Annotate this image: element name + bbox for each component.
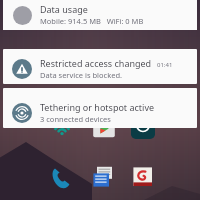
button[interactable]: App: [128, 162, 158, 192]
staticText: 01:41: [157, 61, 173, 69]
staticText: Tethering or hotspot active: [40, 101, 155, 113]
other: Restricted access: [12, 59, 32, 79]
button[interactable]: Phone: [46, 162, 76, 192]
button[interactable]: Restricted access: [3, 49, 197, 84]
button[interactable]: WiFi: [47, 112, 77, 142]
button[interactable]: Data usage: [3, 0, 197, 30]
button[interactable]: Speedtest: [128, 112, 158, 142]
button[interactable]: Documents: [88, 162, 118, 192]
other: Tethering active: [12, 103, 32, 123]
button[interactable]: Tethering active: [3, 88, 197, 128]
staticText: Restricted access changed: [40, 57, 152, 69]
staticText: Mobile: 914.5 MB WiFi: 0 MB: [40, 16, 144, 26]
staticText: 3 connected devices: [40, 114, 111, 124]
button[interactable]: Play Store: [89, 112, 119, 142]
other: Data usage: [13, 6, 32, 25]
staticText: Data usage: [40, 3, 88, 15]
staticText: Data service is blocked.: [40, 70, 123, 80]
